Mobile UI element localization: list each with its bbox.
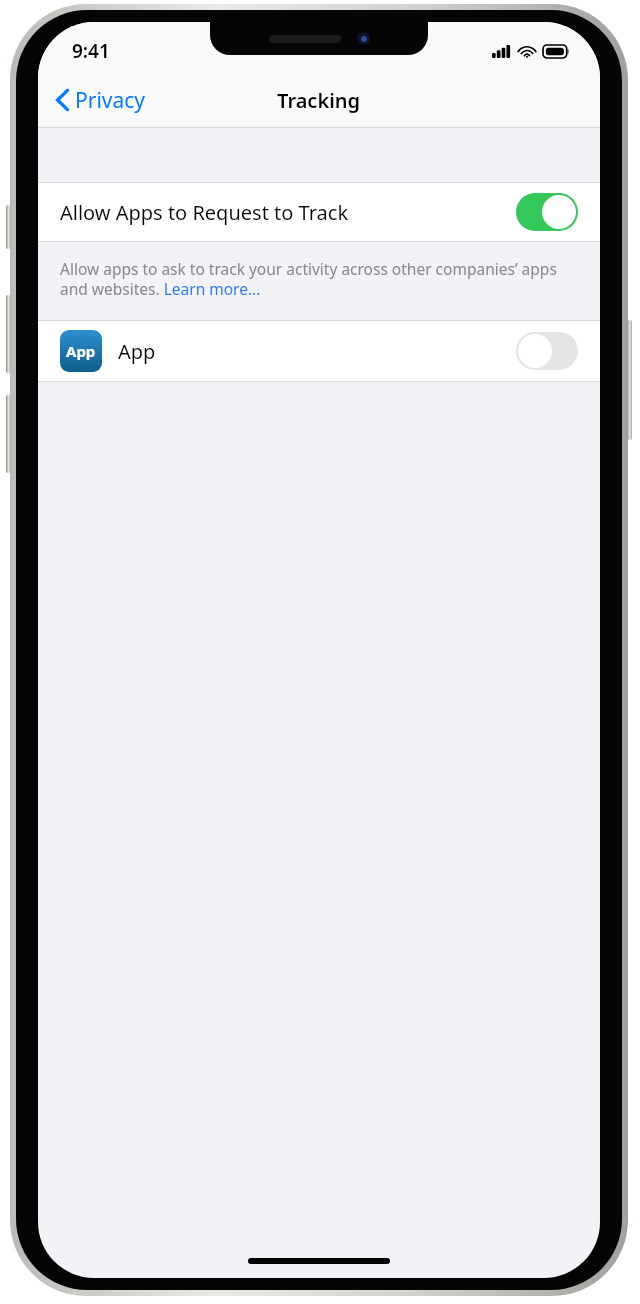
button[interactable]: Privacy: [38, 76, 158, 124]
staticText: Allow Apps to Request to Track: [60, 199, 516, 226]
staticText: Tracking: [277, 87, 361, 114]
staticText: 9:41: [72, 38, 110, 64]
button[interactable]: Toggle off: [516, 332, 578, 370]
button[interactable]: Allow Apps to Request to Track: [38, 183, 600, 241]
button[interactable]: App: [38, 321, 600, 381]
staticText: Privacy: [75, 86, 146, 115]
staticText: App: [118, 338, 516, 365]
staticText: Allow apps to ask to track your activity…: [60, 258, 578, 300]
button[interactable]: Toggle on: [516, 193, 578, 231]
staticText: App: [66, 341, 96, 361]
